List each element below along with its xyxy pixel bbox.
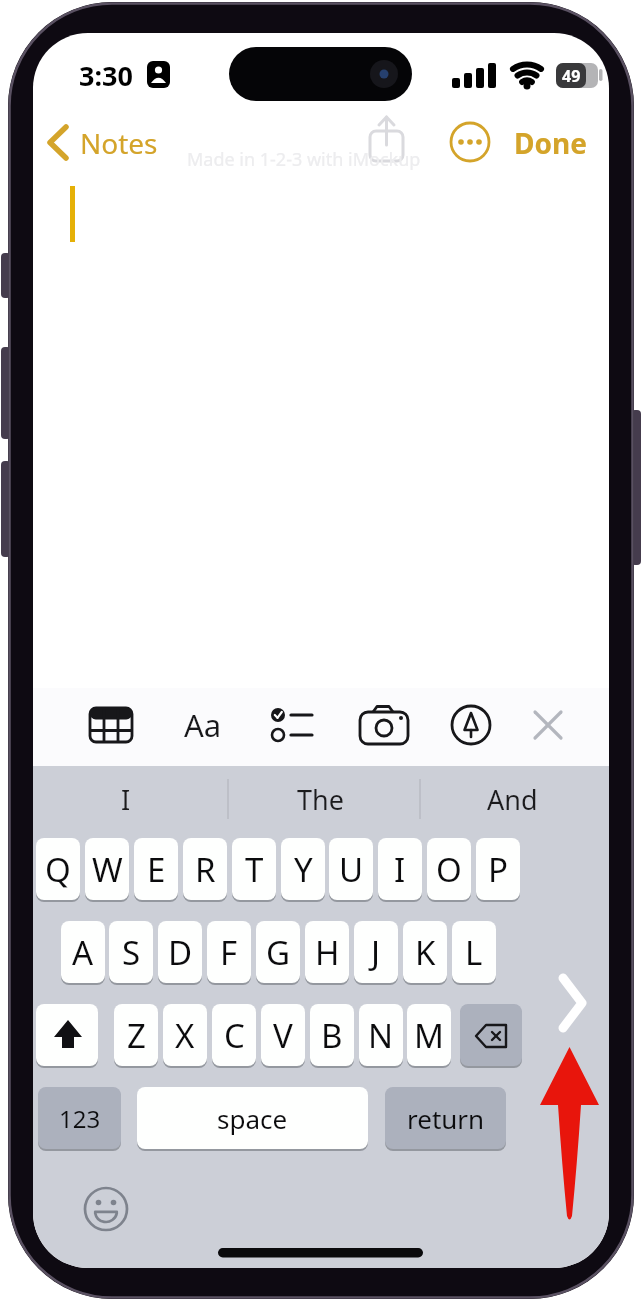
button[interactable]: J bbox=[354, 921, 398, 983]
staticText: D bbox=[168, 930, 193, 975]
button[interactable]: I bbox=[96, 777, 156, 821]
button[interactable]: Z bbox=[114, 1004, 158, 1066]
staticText: P bbox=[488, 847, 508, 892]
button[interactable]: I bbox=[378, 838, 422, 900]
button[interactable]: N bbox=[359, 1004, 403, 1066]
button[interactable]: 123 bbox=[38, 1087, 121, 1149]
staticText: M bbox=[414, 1013, 444, 1058]
staticText: E bbox=[147, 847, 166, 892]
staticText: I bbox=[121, 781, 131, 818]
button[interactable] bbox=[178, 705, 222, 749]
staticText: Q bbox=[45, 847, 71, 892]
button[interactable]: Done bbox=[510, 124, 590, 162]
staticText: R bbox=[195, 847, 216, 892]
staticText: return bbox=[407, 1101, 485, 1136]
button[interactable]: M bbox=[407, 1004, 451, 1066]
staticText: C bbox=[224, 1013, 245, 1058]
button[interactable]: D bbox=[158, 921, 202, 983]
staticText: B bbox=[321, 1013, 343, 1058]
staticText: J bbox=[371, 930, 381, 975]
button[interactable]: H bbox=[305, 921, 349, 983]
staticText: Notes bbox=[80, 124, 158, 162]
staticText: W bbox=[92, 847, 123, 892]
staticText: N bbox=[368, 1013, 394, 1058]
staticText: U bbox=[339, 847, 364, 892]
button[interactable]: W bbox=[85, 838, 129, 900]
button[interactable] bbox=[526, 705, 570, 749]
button[interactable]: B bbox=[310, 1004, 354, 1066]
staticText: X bbox=[175, 1013, 195, 1058]
staticText: F bbox=[220, 930, 238, 975]
button[interactable]: S bbox=[109, 921, 153, 983]
button[interactable]: And bbox=[482, 777, 542, 821]
button[interactable]: X bbox=[163, 1004, 207, 1066]
button[interactable]: O bbox=[427, 838, 471, 900]
staticText: Done bbox=[514, 124, 587, 162]
staticText: A bbox=[72, 930, 94, 975]
button[interactable]: T bbox=[232, 838, 276, 900]
staticText: O bbox=[436, 847, 462, 892]
staticText: 3:30 bbox=[79, 57, 133, 91]
button[interactable] bbox=[84, 1187, 128, 1231]
staticText: 123 bbox=[59, 1102, 101, 1135]
staticText: Aa bbox=[184, 704, 222, 746]
button[interactable]: space bbox=[137, 1087, 368, 1149]
button[interactable]: The bbox=[290, 777, 350, 821]
button[interactable]: V bbox=[261, 1004, 305, 1066]
staticText: Y bbox=[294, 847, 313, 892]
button[interactable]: E bbox=[134, 838, 178, 900]
button[interactable] bbox=[50, 124, 170, 162]
staticText: And bbox=[487, 781, 538, 818]
button[interactable] bbox=[448, 120, 492, 164]
staticText: Made in 1-2-3 with iMockup bbox=[187, 147, 421, 172]
staticText: The bbox=[297, 781, 344, 818]
button[interactable]: P bbox=[476, 838, 520, 900]
button[interactable]: L bbox=[452, 921, 496, 983]
button[interactable]: R bbox=[183, 838, 227, 900]
button[interactable] bbox=[550, 970, 598, 1036]
button[interactable] bbox=[363, 705, 407, 749]
button[interactable] bbox=[449, 705, 493, 749]
staticText: K bbox=[415, 930, 436, 975]
button[interactable]: return bbox=[385, 1087, 506, 1149]
button[interactable]: U bbox=[329, 838, 373, 900]
button[interactable]: Q bbox=[36, 838, 80, 900]
button[interactable] bbox=[272, 705, 316, 749]
staticText: L bbox=[465, 930, 483, 975]
staticText: Z bbox=[127, 1013, 146, 1058]
staticText: S bbox=[122, 930, 141, 975]
staticText: space bbox=[217, 1101, 288, 1136]
button[interactable]: A bbox=[61, 921, 105, 983]
button[interactable]: K bbox=[403, 921, 447, 983]
button[interactable] bbox=[460, 1004, 522, 1066]
staticText: T bbox=[245, 847, 264, 892]
staticText: V bbox=[273, 1013, 293, 1058]
button[interactable] bbox=[36, 1004, 98, 1066]
button[interactable]: G bbox=[256, 921, 300, 983]
button[interactable] bbox=[364, 113, 410, 165]
button[interactable] bbox=[86, 705, 130, 749]
staticText: G bbox=[266, 930, 291, 975]
button[interactable]: F bbox=[207, 921, 251, 983]
staticText: I bbox=[394, 847, 406, 892]
button[interactable]: Y bbox=[281, 838, 325, 900]
staticText: 49 bbox=[562, 65, 581, 87]
button[interactable]: C bbox=[212, 1004, 256, 1066]
staticText: H bbox=[315, 930, 340, 975]
